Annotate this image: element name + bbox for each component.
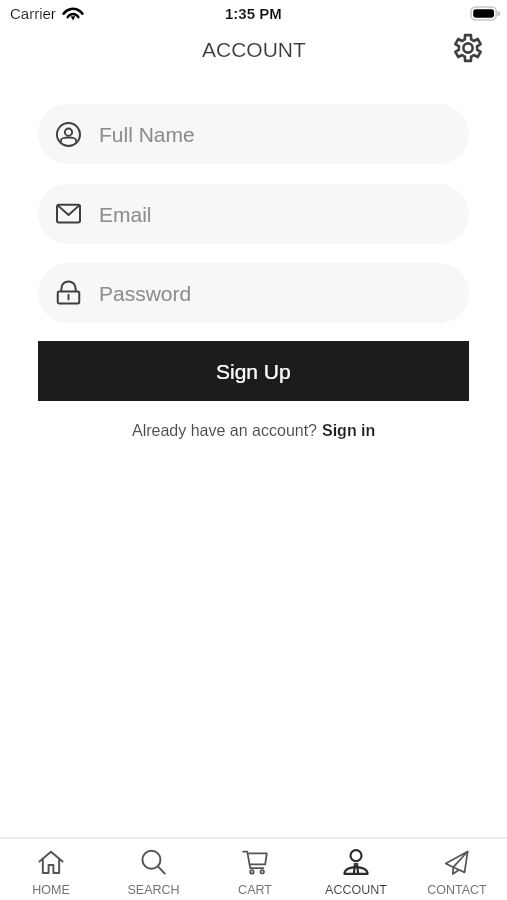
button[interactable]: Password	[38, 263, 469, 323]
button[interactable]: CONTACT	[406, 839, 507, 900]
staticText: Password	[99, 282, 192, 305]
staticText: 1:35 PM	[225, 5, 282, 22]
staticText: CONTACT	[427, 883, 487, 897]
button[interactable]: SEARCH	[102, 839, 204, 900]
staticText: ACCOUNT	[202, 38, 306, 61]
staticText: CART	[238, 883, 272, 897]
button[interactable]: Email	[38, 184, 469, 244]
staticText: Email	[99, 203, 152, 226]
staticText: Sign Up	[216, 360, 291, 383]
staticText: Carrier	[10, 5, 56, 22]
button[interactable]: Settings	[448, 28, 488, 68]
staticText: SEARCH	[127, 883, 180, 897]
button[interactable]: Sign Up	[38, 341, 469, 401]
staticText: Already have an account?	[132, 422, 322, 440]
staticText: Sign in	[322, 422, 376, 440]
button[interactable]: ACCOUNT	[305, 839, 406, 900]
button[interactable]: Full Name	[38, 104, 469, 164]
button[interactable]: Sign in	[322, 422, 376, 440]
button[interactable]: HOME	[0, 839, 102, 900]
staticText: ACCOUNT	[325, 883, 387, 897]
button[interactable]: CART	[204, 839, 305, 900]
staticText: HOME	[32, 883, 70, 897]
staticText: Full Name	[99, 123, 195, 146]
